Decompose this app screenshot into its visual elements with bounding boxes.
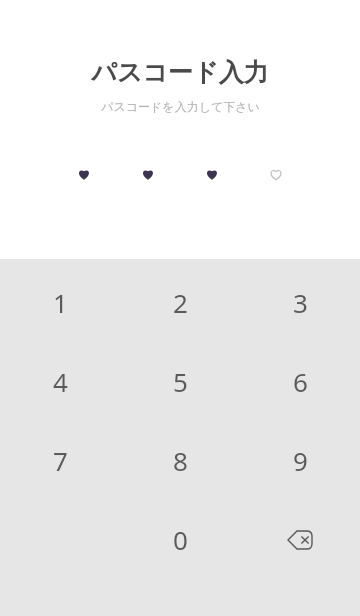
button[interactable]: 3 (240, 263, 360, 342)
staticText: 0 (173, 522, 188, 557)
staticText: 5 (173, 364, 188, 399)
button[interactable]: 6 (240, 342, 360, 421)
staticText: 9 (293, 443, 308, 478)
staticText: 4 (53, 364, 68, 399)
staticText: 8 (173, 443, 188, 478)
staticText: 6 (293, 364, 308, 399)
staticText: 2 (173, 285, 188, 320)
button[interactable]: 7 (0, 421, 120, 500)
button[interactable]: 8 (120, 421, 240, 500)
button[interactable]: 4 (0, 342, 120, 421)
button[interactable]: 1 (0, 263, 120, 342)
staticText: 1 (53, 285, 68, 320)
button[interactable]: 0 (120, 500, 240, 579)
staticText: 3 (293, 285, 308, 320)
staticText: パスコードを入力して下さい (101, 99, 260, 114)
button[interactable]: 9 (240, 421, 360, 500)
button[interactable]: 5 (120, 342, 240, 421)
button[interactable]: 2 (120, 263, 240, 342)
button[interactable]: Delete (240, 500, 360, 579)
staticText: 7 (53, 443, 68, 478)
staticText: パスコード入力 (91, 57, 269, 88)
